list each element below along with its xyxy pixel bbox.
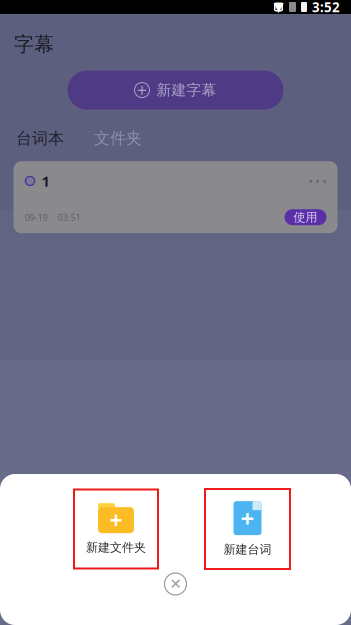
button[interactable]: 文件夹: [92, 129, 144, 148]
staticText: 新建台词: [223, 542, 271, 557]
button[interactable]: 台词本: [14, 129, 66, 148]
staticText: 03:51: [57, 211, 80, 223]
button[interactable]: +: [205, 489, 290, 569]
staticText: 新建字幕: [156, 81, 216, 99]
staticText: 新建文件夹: [86, 540, 146, 555]
staticText: +: [109, 505, 122, 535]
button[interactable]: Close: [164, 573, 186, 595]
button[interactable]: 1: [13, 161, 337, 233]
staticText: 3:52: [312, 0, 340, 16]
staticText: ▼: [273, 0, 283, 14]
staticText: • • •: [308, 174, 326, 188]
staticText: +: [137, 79, 147, 102]
staticText: 1: [41, 171, 49, 191]
staticText: 文件夹: [94, 129, 142, 148]
staticText: 09-19: [24, 211, 47, 223]
staticText: 台词本: [16, 129, 64, 148]
staticText: +: [240, 502, 254, 534]
staticText: 字幕: [14, 32, 54, 57]
staticText: ✕: [169, 576, 181, 592]
staticText: 使用: [293, 210, 317, 224]
button[interactable]: +: [74, 489, 158, 568]
button[interactable]: +: [67, 71, 283, 110]
